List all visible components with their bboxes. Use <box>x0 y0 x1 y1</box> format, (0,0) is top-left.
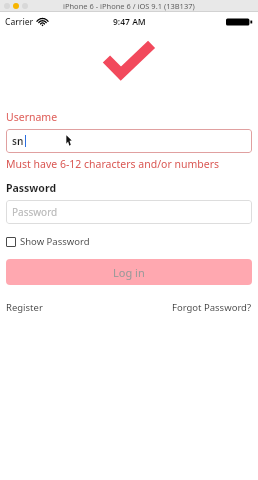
staticText: Register <box>6 301 43 314</box>
staticText: sn <box>12 134 24 148</box>
other: Cursor <box>66 135 73 146</box>
button[interactable]: Register <box>6 301 43 314</box>
button[interactable]: sn <box>6 129 252 153</box>
staticText: Forgot Password? <box>172 301 252 314</box>
staticText: Log in <box>113 265 145 280</box>
button[interactable]: Log in <box>6 259 252 285</box>
button[interactable]: Password <box>6 200 252 224</box>
staticText: 9:47 AM <box>113 16 146 28</box>
button[interactable]: Show Password <box>6 235 90 248</box>
staticText: Carrier <box>5 16 34 28</box>
button[interactable]: Forgot Password? <box>172 301 252 314</box>
staticText: Show Password <box>20 235 90 248</box>
staticText: Username <box>6 110 58 124</box>
staticText: Must have 6-12 characters and/or numbers <box>6 157 220 171</box>
staticText: iPhone 6 - iPhone 6 / iOS 9.1 (13B137) <box>63 1 195 11</box>
staticText: Password <box>12 205 58 219</box>
staticText: Password <box>6 181 57 195</box>
